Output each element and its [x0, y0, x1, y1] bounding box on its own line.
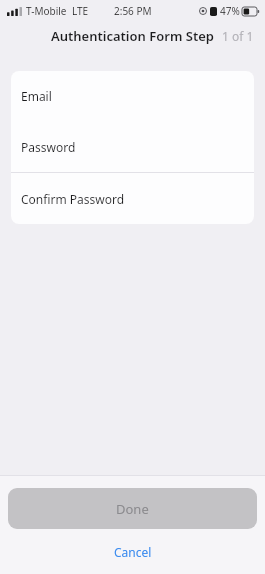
- staticText: 1 of 1: [222, 28, 254, 44]
- staticText: Authentication Form Step: [51, 27, 214, 45]
- button[interactable]: Email: [11, 71, 254, 121]
- staticText: Done: [116, 500, 149, 518]
- staticText: Cancel: [114, 544, 152, 560]
- staticText: Email: [21, 88, 52, 104]
- button[interactable]: Done: [8, 488, 257, 529]
- button[interactable]: Confirm Password: [11, 173, 254, 224]
- button[interactable]: Cancel: [0, 529, 265, 574]
- staticText: 2:56 PM: [114, 4, 152, 18]
- staticText: Confirm Password: [21, 191, 125, 207]
- staticText: T-Mobile: [26, 4, 67, 18]
- button[interactable]: Password: [11, 121, 254, 172]
- staticText: LTE: [72, 4, 89, 18]
- staticText: 47%: [220, 4, 240, 18]
- staticText: Password: [21, 139, 76, 155]
